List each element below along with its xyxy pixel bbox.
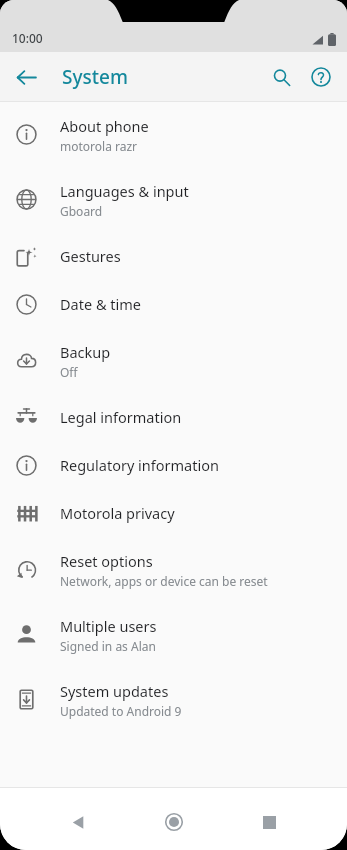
- staticText: Reset options: [60, 551, 153, 571]
- button[interactable]: Reset options: [0, 537, 347, 602]
- button[interactable]: Home: [156, 804, 192, 840]
- staticText: Regulatory information: [60, 455, 219, 475]
- staticText: Off: [60, 364, 78, 380]
- button[interactable]: Gestures: [0, 232, 347, 280]
- button[interactable]: Date & time: [0, 280, 347, 328]
- staticText: 10:00: [12, 30, 43, 46]
- button[interactable]: Languages & input: [0, 167, 347, 232]
- button[interactable]: Legal information: [0, 393, 347, 441]
- button[interactable]: Search: [261, 57, 301, 97]
- staticText: Languages & input: [60, 181, 189, 201]
- staticText: Backup: [60, 342, 111, 362]
- staticText: Motorola privacy: [60, 503, 175, 523]
- staticText: Signed in as Alan: [60, 638, 156, 654]
- button[interactable]: Recents: [251, 804, 287, 840]
- staticText: Multiple users: [60, 616, 157, 636]
- staticText: About phone: [60, 116, 149, 136]
- button[interactable]: Help: [301, 57, 341, 97]
- staticText: Gboard: [60, 203, 103, 219]
- staticText: Updated to Android 9: [60, 703, 182, 719]
- staticText: Gestures: [60, 246, 121, 266]
- button[interactable]: System updates: [0, 667, 347, 732]
- staticText: Date & time: [60, 294, 141, 314]
- staticText: System updates: [60, 681, 169, 701]
- button[interactable]: Multiple users: [0, 602, 347, 667]
- button[interactable]: Back: [6, 57, 46, 97]
- staticText: Network, apps or device can be reset: [60, 573, 268, 589]
- button[interactable]: Regulatory information: [0, 441, 347, 489]
- button[interactable]: Back: [60, 804, 96, 840]
- staticText: System: [62, 64, 128, 90]
- staticText: motorola razr: [60, 138, 138, 154]
- staticText: Legal information: [60, 407, 182, 427]
- button[interactable]: About phone: [0, 102, 347, 167]
- button[interactable]: Backup: [0, 328, 347, 393]
- button[interactable]: Motorola privacy: [0, 489, 347, 537]
